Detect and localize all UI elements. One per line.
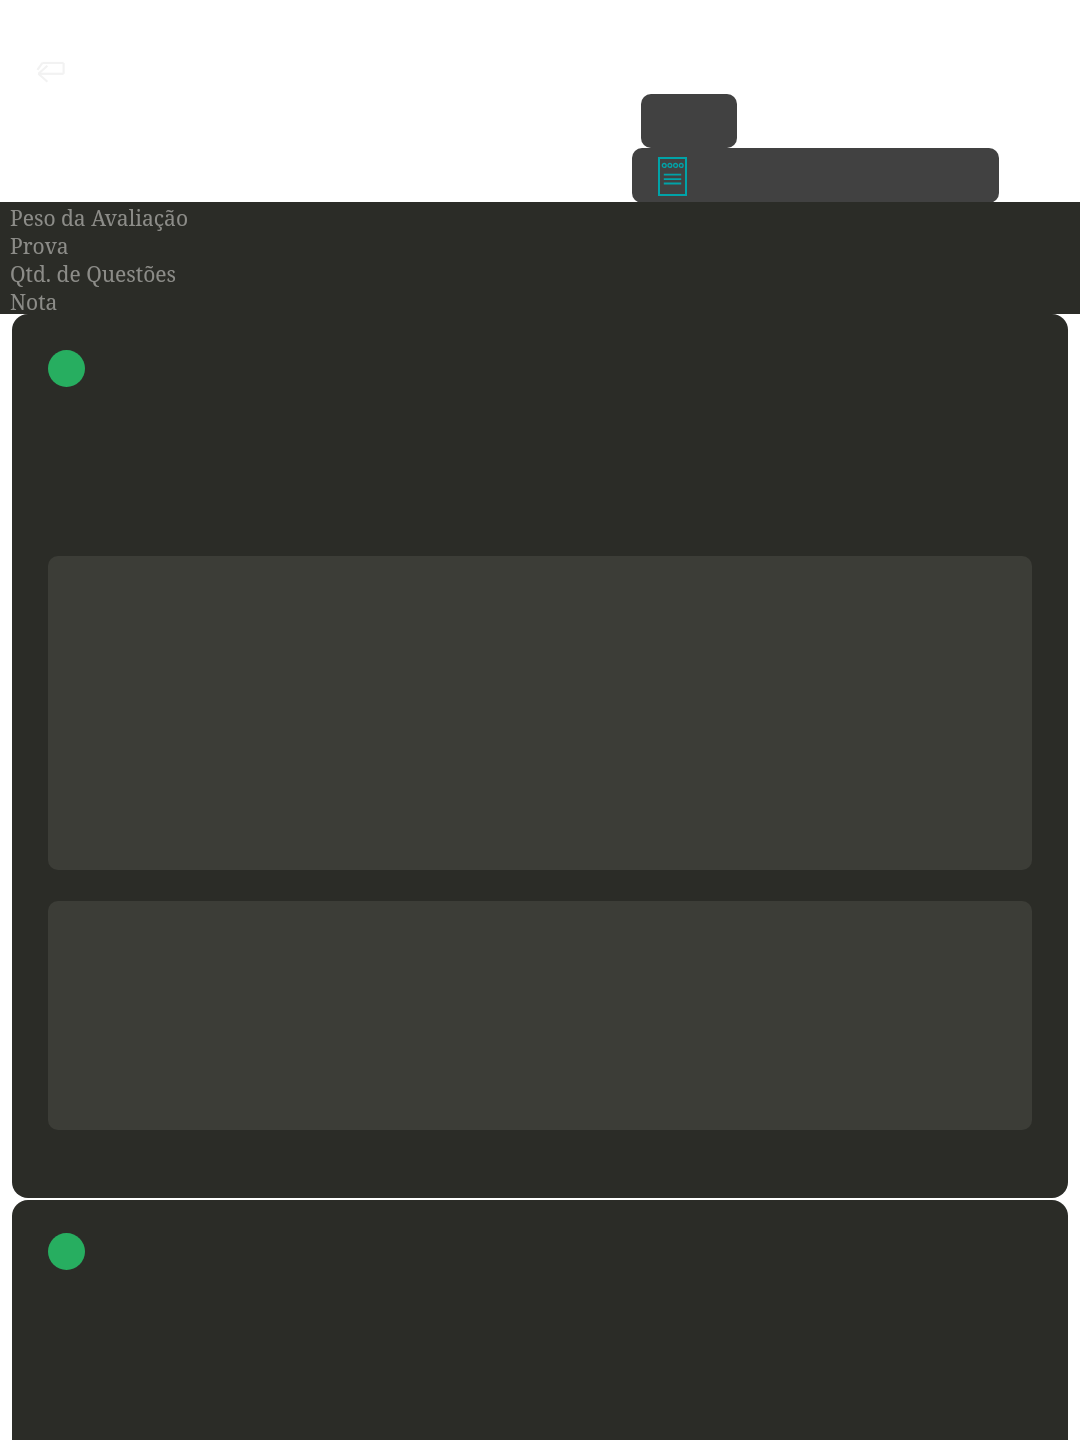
staticText: Nota bbox=[10, 288, 58, 316]
staticText: Prova bbox=[10, 232, 69, 260]
button[interactable] bbox=[12, 314, 1068, 1198]
staticText: Peso da Avaliação bbox=[10, 204, 188, 232]
button[interactable] bbox=[12, 1200, 1068, 1440]
button[interactable]: Voltar bbox=[30, 50, 70, 86]
other: Prova bbox=[658, 157, 687, 196]
button[interactable]: Prova bbox=[632, 148, 999, 203]
staticText: Qtd. de Questões bbox=[10, 260, 177, 288]
button[interactable]: Opções bbox=[641, 94, 737, 148]
